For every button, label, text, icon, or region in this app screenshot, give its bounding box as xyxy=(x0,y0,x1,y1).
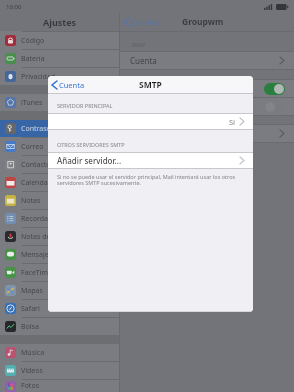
button[interactable]: Safari xyxy=(0,300,119,317)
button[interactable]: iTunes xyxy=(0,94,119,111)
staticText: Calendario xyxy=(21,178,57,188)
staticText: Recordatorios xyxy=(21,214,67,224)
other: Abrir xyxy=(240,118,244,125)
staticText: IMAP xyxy=(132,41,146,48)
button[interactable]: Vídeos xyxy=(0,362,119,379)
button[interactable]: FaceTime xyxy=(0,264,119,281)
staticText: SERVIDOR PRINCIPAL xyxy=(57,102,113,109)
staticText: Fotos xyxy=(21,381,39,391)
staticText: Mapas xyxy=(21,286,43,296)
staticText: Cuentas xyxy=(131,17,160,27)
button[interactable]: Música xyxy=(0,344,119,361)
staticText: Privacidad xyxy=(21,72,56,82)
staticText: Bolsa xyxy=(21,322,39,332)
staticText: Contraseñas xyxy=(21,124,63,134)
button[interactable]: Contraseñas xyxy=(0,120,119,137)
button[interactable]: Cuenta xyxy=(52,80,85,90)
staticText: Vídeos xyxy=(21,366,43,376)
staticText: Código xyxy=(21,36,45,46)
staticText: Mensajes xyxy=(21,250,53,260)
staticText: 10:00 xyxy=(6,3,22,11)
staticText: Sí xyxy=(229,117,236,127)
staticText: Safari xyxy=(21,304,40,314)
other: Activado xyxy=(264,83,285,95)
staticText: Correo xyxy=(21,142,44,152)
staticText: Ajustes xyxy=(43,16,77,28)
button[interactable]: Notas xyxy=(0,192,119,209)
button[interactable]: Mapas xyxy=(0,282,119,299)
button[interactable]: Activado xyxy=(120,80,294,97)
other: Abrir xyxy=(280,57,284,64)
button[interactable]: Cuenta xyxy=(120,52,294,69)
staticText: Añadir servidor... xyxy=(57,155,122,166)
button[interactable]: Sí xyxy=(48,114,253,129)
staticText: iTunes xyxy=(21,98,43,108)
button[interactable]: Abrir xyxy=(120,125,294,142)
staticText: SMTP xyxy=(139,79,162,91)
staticText: Batería xyxy=(21,54,45,64)
button[interactable]: Cuentas xyxy=(124,17,160,27)
other: Abrir xyxy=(280,130,284,137)
other: Abrir xyxy=(240,157,244,164)
staticText: Groupwm xyxy=(182,16,224,28)
button[interactable]: Fotos xyxy=(0,380,119,392)
button[interactable]: Batería xyxy=(0,50,119,67)
button[interactable]: Contactos xyxy=(0,156,119,173)
staticText: Cuenta xyxy=(130,55,157,66)
button[interactable]: Calendario xyxy=(0,174,119,191)
staticText: Contactos xyxy=(21,160,54,170)
button[interactable]: Código xyxy=(0,32,119,49)
staticText: Notas de voz xyxy=(21,232,64,242)
button[interactable]: Desactivado xyxy=(120,98,294,115)
button[interactable]: Privacidad xyxy=(0,68,119,85)
other: Desactivado xyxy=(264,101,285,113)
button[interactable]: Añadir servidor... xyxy=(48,153,253,168)
button[interactable]: Recordatorios xyxy=(0,210,119,227)
staticText: Música xyxy=(21,348,45,358)
staticText: OTROS SERVIDORES SMTP xyxy=(57,141,125,148)
button[interactable]: Mensajes xyxy=(0,246,119,263)
staticText: Cuenta xyxy=(59,80,85,90)
button[interactable]: Notas de voz xyxy=(0,228,119,245)
staticText: Si no se puede usar el servidor principa… xyxy=(57,173,244,187)
staticText: Notas xyxy=(21,196,41,206)
button[interactable]: Correo xyxy=(0,138,119,155)
button[interactable]: Bolsa xyxy=(0,318,119,335)
staticText: FaceTime xyxy=(21,268,53,278)
